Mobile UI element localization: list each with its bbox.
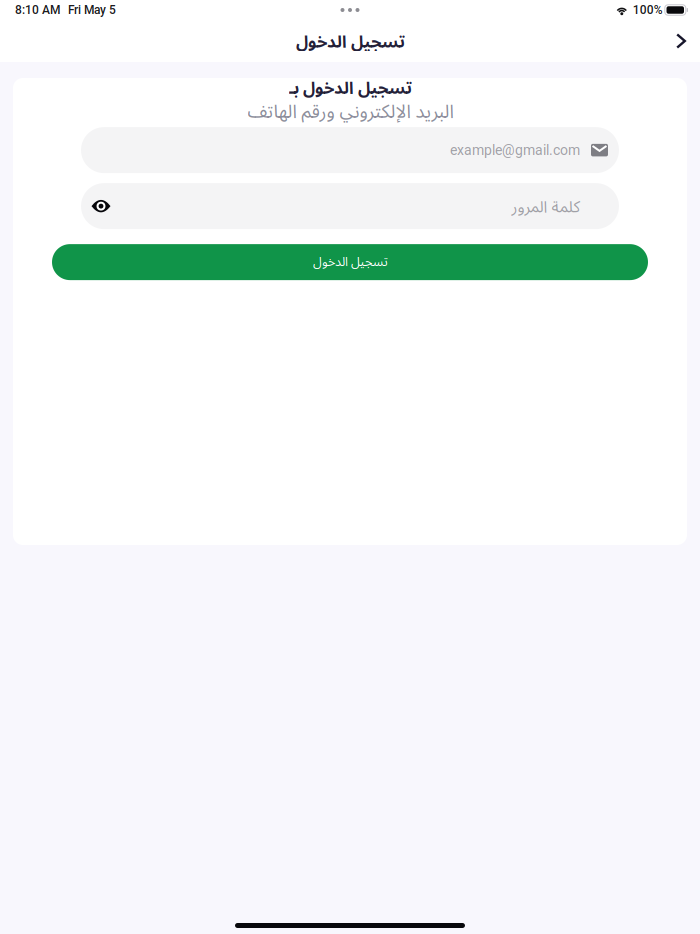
button[interactable]: Continue (663, 23, 699, 59)
button[interactable]: example@gmail.com (81, 127, 619, 173)
staticText: تسجيل الدخول (295, 30, 404, 52)
staticText: البريد الإلكتروني ورقم الهاتف (247, 98, 453, 123)
staticText: 8:10 AM (15, 3, 60, 17)
staticText: تسجيل الدخول بـ (288, 76, 411, 99)
button[interactable]: Show password (88, 193, 114, 219)
staticText: كلمة المرور (511, 195, 580, 217)
staticText: تسجيل الدخول (312, 252, 387, 270)
staticText: example@gmail.com (450, 142, 580, 158)
staticText: Fri May 5 (68, 3, 116, 17)
button[interactable]: تسجيل الدخول (52, 244, 648, 280)
staticText: 100% (633, 3, 663, 17)
